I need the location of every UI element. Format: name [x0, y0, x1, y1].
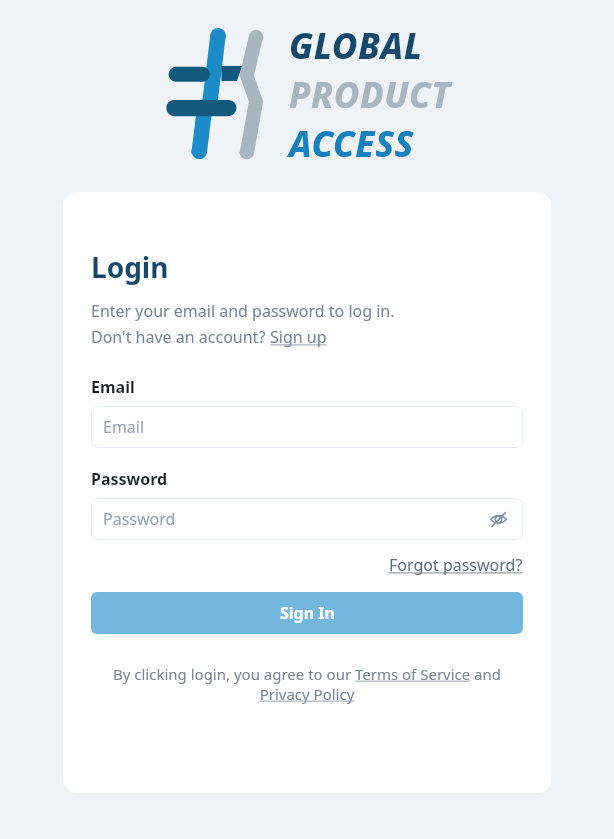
staticText: Email: [103, 416, 145, 438]
button[interactable]: By clicking login, you agree to our Term…: [109, 664, 505, 704]
staticText: ACCESS: [289, 120, 414, 168]
staticText: Login: [91, 248, 169, 286]
staticText: Sign up: [270, 326, 327, 348]
staticText: Password: [91, 468, 168, 490]
button[interactable]: Sign up: [270, 326, 327, 348]
staticText: By clicking login, you agree to our Term…: [109, 664, 505, 704]
staticText: Email: [91, 376, 135, 398]
staticText: Sign In: [280, 602, 335, 624]
button[interactable]: Forgot password?: [389, 554, 523, 576]
button[interactable]: Password: [91, 498, 523, 540]
staticText: GLOBAL: [289, 22, 423, 70]
staticText: Forgot password?: [389, 554, 523, 576]
button[interactable]: Email: [91, 406, 523, 448]
staticText: Don't have an account?: [91, 326, 270, 348]
staticText: PRODUCT: [289, 71, 451, 119]
other: Global Product Access logo: [164, 30, 279, 160]
staticText: Password: [103, 508, 176, 530]
staticText: Enter your email and password to log in.: [91, 300, 395, 322]
button[interactable]: Sign In: [91, 592, 523, 634]
button[interactable]: Show password: [485, 506, 511, 532]
